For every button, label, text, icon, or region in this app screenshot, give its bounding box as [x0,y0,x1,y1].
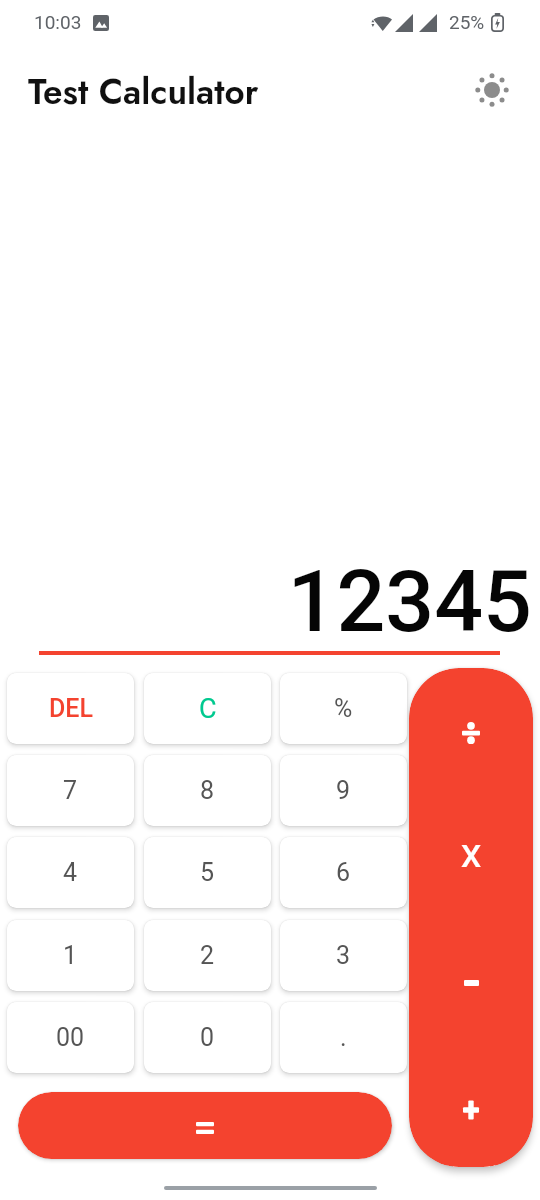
staticText: 4 [63,858,78,887]
button[interactable]: 5 [144,837,271,908]
button[interactable]: 2 [144,920,271,991]
staticText: 25% [449,11,485,33]
button[interactable]: 4 [7,837,134,908]
staticText: Test Calculator [28,67,259,118]
button[interactable]: Multiply [409,793,533,918]
button[interactable]: C [144,673,271,744]
button[interactable]: DEL [7,673,134,744]
button[interactable]: % [280,673,407,744]
staticText: . [340,1023,347,1052]
staticText: 00 [56,1023,85,1052]
button[interactable]: Toggle theme [469,67,515,113]
button[interactable]: 0 [144,1002,271,1073]
staticText: 10:03 [34,11,82,33]
button[interactable]: Add [409,1047,533,1167]
button[interactable]: 00 [7,1002,134,1073]
staticText: 9 [336,776,351,805]
button[interactable]: Subtract [409,920,533,1045]
staticText: DEL [49,694,93,723]
staticText: 6 [336,858,351,887]
staticText: 5 [200,858,215,887]
staticText: X [461,837,482,875]
staticText: 2 [200,941,215,970]
button[interactable]: 3 [280,920,407,991]
staticText: C [199,693,217,725]
button[interactable]: 9 [280,755,407,826]
staticText: 0 [200,1023,215,1052]
button[interactable]: 8 [144,755,271,826]
staticText: 12345 [0,551,532,652]
staticText: 8 [200,776,215,805]
staticText: 3 [336,941,351,970]
staticText: 7 [63,776,78,805]
staticText: 1 [63,941,78,970]
button[interactable]: 1 [7,920,134,991]
button[interactable]: Equals [18,1092,392,1159]
button[interactable]: . [280,1002,407,1073]
button[interactable]: Divide [409,670,533,795]
button[interactable]: 6 [280,837,407,908]
staticText: % [334,694,353,723]
button[interactable]: 7 [7,755,134,826]
